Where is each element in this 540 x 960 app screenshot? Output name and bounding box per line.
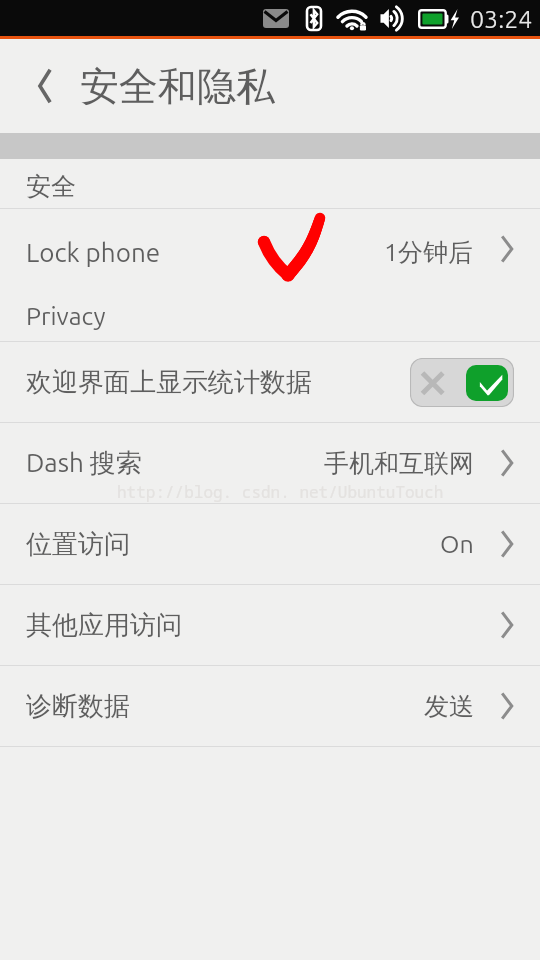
staticText: 1分钟后	[384, 237, 474, 268]
staticText: 位置访问	[26, 528, 130, 561]
staticText: 03:24	[470, 5, 533, 33]
staticText: Dash 搜索	[26, 447, 142, 480]
staticText: http://blog. csdn. net/UbuntuTouch	[117, 481, 444, 503]
staticText: 安全	[26, 171, 76, 202]
button[interactable]: 其他应用访问	[0, 585, 540, 665]
staticText: 其他应用访问	[26, 609, 182, 642]
button[interactable]: 位置访问	[0, 504, 540, 584]
staticText: 欢迎界面上显示统计数据	[26, 366, 312, 399]
button[interactable]: Lock phone	[0, 209, 540, 289]
button[interactable]: Dash 搜索	[0, 423, 540, 503]
button[interactable]: 诊断数据	[0, 666, 540, 746]
button[interactable]: Toggle statistics	[410, 358, 514, 407]
staticText: Lock phone	[26, 238, 161, 267]
staticText: 安全和隐私	[80, 62, 275, 111]
staticText: On	[440, 530, 474, 558]
staticText: Privacy	[26, 302, 106, 330]
button[interactable]: Back	[30, 62, 60, 110]
staticText: 手机和互联网	[324, 448, 474, 479]
staticText: 诊断数据	[26, 690, 130, 723]
staticText: 发送	[424, 691, 474, 722]
